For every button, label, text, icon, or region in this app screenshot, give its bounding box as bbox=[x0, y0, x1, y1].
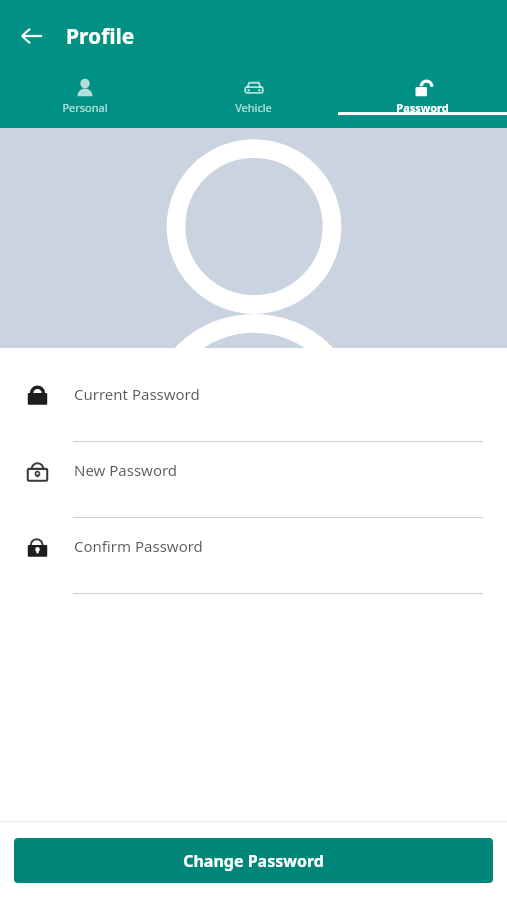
staticText: Profile bbox=[66, 22, 135, 51]
button[interactable]: Change Password bbox=[14, 838, 493, 883]
staticText: Confirm Password bbox=[74, 536, 203, 556]
button[interactable]: Password bbox=[338, 72, 507, 115]
staticText: Personal bbox=[62, 100, 108, 115]
staticText: New Password bbox=[74, 460, 178, 480]
staticText: Current Password bbox=[74, 384, 200, 404]
staticText: Change Password bbox=[183, 850, 324, 872]
button[interactable]: Personal bbox=[0, 72, 169, 115]
staticText: Vehicle bbox=[235, 100, 272, 115]
button[interactable]: Current Password bbox=[0, 366, 507, 442]
staticText: Password bbox=[396, 100, 449, 115]
button[interactable]: Confirm Password bbox=[0, 518, 507, 594]
button[interactable]: New Password bbox=[0, 442, 507, 518]
button[interactable]: Back bbox=[12, 16, 52, 56]
button[interactable]: Vehicle bbox=[169, 72, 338, 115]
